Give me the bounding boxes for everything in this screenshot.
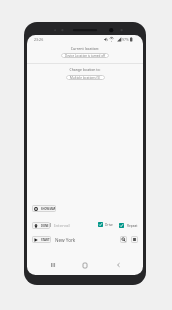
button[interactable]: Repeat	[119, 223, 138, 228]
button[interactable]: Device Location is turned off	[61, 53, 109, 58]
staticText: Current location:	[27, 46, 143, 51]
button[interactable]: START	[32, 236, 51, 243]
staticText: 23:26	[34, 37, 44, 42]
staticText: New York	[55, 237, 76, 243]
button[interactable]: Home	[78, 258, 92, 272]
staticText: DONE	[41, 224, 49, 228]
staticText: START	[41, 238, 50, 242]
button[interactable]: DONE	[32, 222, 50, 229]
staticText: Multiple locations (5)	[70, 76, 101, 80]
staticText: Device Location is turned off	[65, 54, 106, 58]
button[interactable]: Search	[120, 236, 127, 243]
button[interactable]: Drive	[98, 222, 116, 227]
button[interactable]: Back	[111, 258, 125, 272]
staticText: 97%	[122, 37, 129, 42]
button[interactable]: SHOW MAP	[32, 205, 56, 212]
staticText: Repeat	[127, 224, 138, 228]
button[interactable]: List	[131, 236, 138, 243]
button[interactable]: Multiple locations (5)	[66, 75, 105, 80]
staticText: SHOW MAP	[41, 207, 56, 211]
staticText: Interval	[54, 222, 70, 228]
staticText: Change location to:	[27, 67, 143, 72]
button[interactable]: Recents	[46, 258, 60, 272]
staticText: Drive	[105, 223, 113, 227]
